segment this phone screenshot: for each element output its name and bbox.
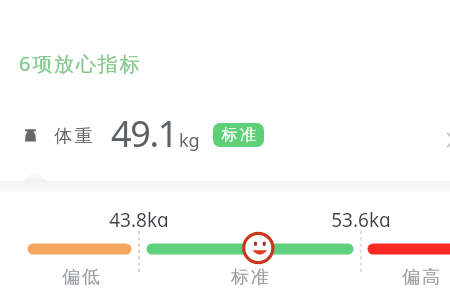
staticText: 6项放心指标	[19, 50, 142, 77]
button[interactable]: 标准	[213, 123, 264, 147]
button[interactable]: 偏低	[51, 266, 111, 288]
staticText: 标准	[230, 266, 270, 288]
staticText: 偏低	[61, 266, 101, 288]
button[interactable]: 标准	[220, 266, 280, 288]
staticText: 偏高	[401, 266, 441, 288]
staticText: 49.1	[111, 109, 177, 158]
button[interactable]: 偏高	[391, 266, 450, 288]
button[interactable]: 6项放心指标	[19, 50, 142, 77]
staticText: 43.8kg	[109, 207, 169, 227]
staticText: 体重	[53, 125, 94, 148]
other: Standard range marker	[242, 232, 275, 265]
staticText: 53.6kg	[331, 207, 391, 227]
staticText: 标准	[220, 125, 257, 145]
button[interactable]: Details	[440, 128, 450, 152]
other: Weight	[25, 128, 36, 142]
staticText: kg	[179, 128, 200, 153]
